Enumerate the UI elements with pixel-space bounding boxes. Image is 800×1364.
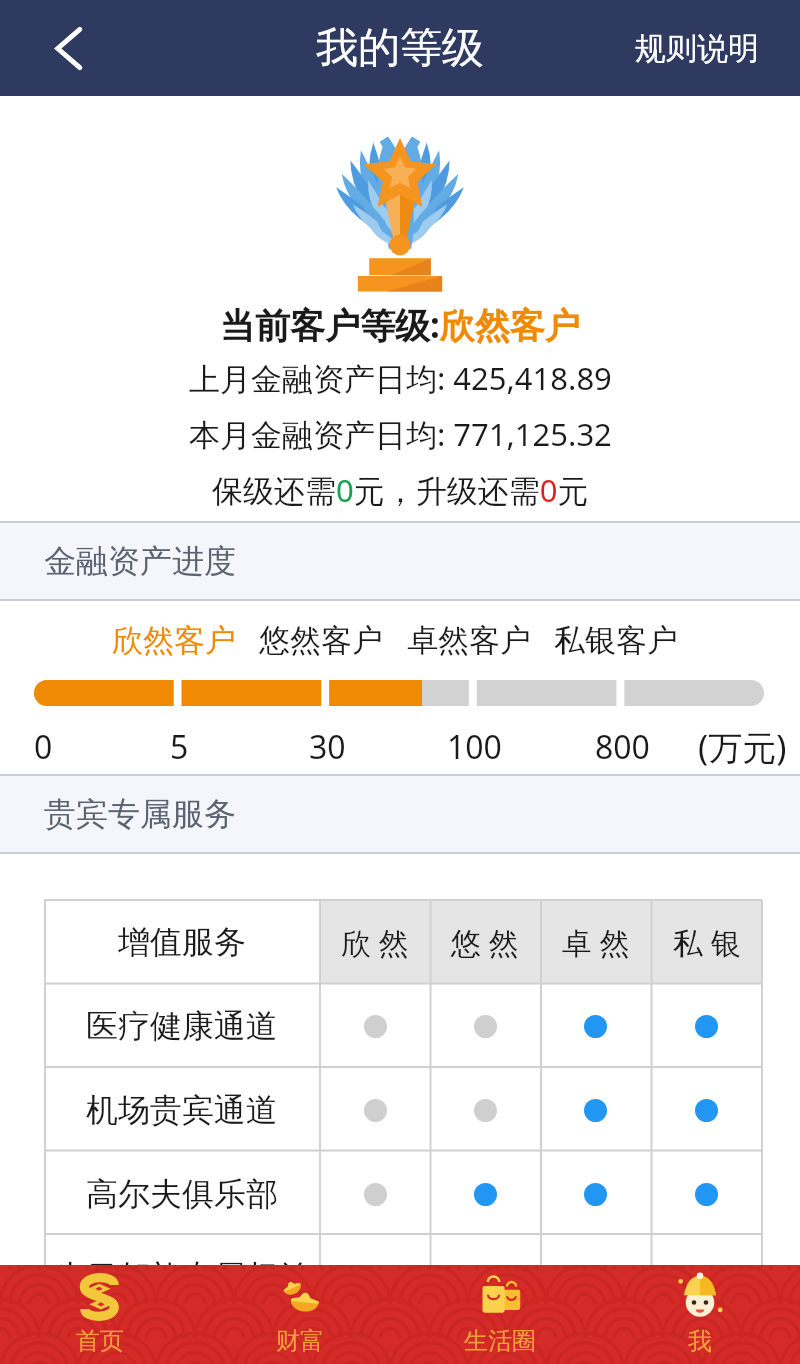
- staticText: 我的等级: [316, 22, 484, 75]
- staticText: 30: [309, 725, 346, 769]
- button[interactable]: 财富: [200, 1265, 400, 1364]
- button[interactable]: Back: [0, 0, 134, 96]
- staticText: (万元): [698, 724, 787, 770]
- staticText: 当前客户等级:欣然客户: [220, 301, 580, 349]
- staticText: 生日贺礼专属权益: [54, 1257, 310, 1297]
- staticText: 生活圈: [464, 1326, 536, 1356]
- button[interactable]: 生活圈: [400, 1265, 600, 1364]
- staticText: 我: [688, 1326, 712, 1356]
- staticText: 金融资产进度: [44, 541, 236, 581]
- staticText: 私银客户: [554, 621, 678, 660]
- staticText: 欣 然: [341, 922, 409, 963]
- staticText: 医疗健康通道: [86, 1006, 278, 1046]
- button[interactable]: 生日贺礼专属权益: [44, 1236, 762, 1318]
- button[interactable]: 我: [600, 1265, 800, 1364]
- staticText: 私 银: [673, 922, 741, 963]
- staticText: 卓 然: [562, 922, 630, 963]
- button[interactable]: 首页: [0, 1265, 200, 1364]
- staticText: 0: [34, 725, 53, 769]
- staticText: 财富: [276, 1326, 324, 1356]
- button[interactable]: 机场贵宾通道: [44, 1068, 762, 1152]
- staticText: 保级还需0元，升级还需0元: [212, 469, 589, 511]
- staticText: 规则说明: [635, 29, 759, 68]
- button[interactable]: 规则说明: [611, 0, 800, 96]
- staticText: 高尔夫俱乐部: [86, 1174, 278, 1214]
- button[interactable]: 高尔夫俱乐部: [44, 1152, 762, 1236]
- staticText: 悠然客户: [259, 621, 383, 660]
- staticText: 增值服务: [118, 922, 246, 962]
- staticText: 本月金融资产日均: 771,125.32: [189, 413, 612, 455]
- staticText: 100: [447, 725, 502, 769]
- button[interactable]: 医疗健康通道: [44, 984, 762, 1068]
- staticText: 800: [595, 725, 650, 769]
- staticText: 卓然客户: [407, 621, 531, 660]
- staticText: 5: [170, 725, 189, 769]
- staticText: 首页: [76, 1326, 124, 1356]
- staticText: 机场贵宾通道: [86, 1090, 278, 1130]
- staticText: 悠 然: [451, 922, 519, 963]
- staticText: 贵宾专属服务: [44, 794, 236, 834]
- staticText: 上月金融资产日均: 425,418.89: [189, 357, 612, 399]
- staticText: 欣然客户: [112, 621, 236, 660]
